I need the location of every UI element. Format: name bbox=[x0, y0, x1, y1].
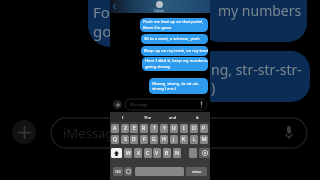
button[interactable]: The bbox=[135, 112, 160, 122]
button[interactable]: 123 bbox=[113, 167, 123, 176]
button[interactable]: Shift bbox=[111, 148, 122, 158]
staticText: O bbox=[192, 125, 196, 132]
staticText: Z bbox=[124, 125, 127, 132]
staticText: E bbox=[133, 125, 136, 132]
staticText: Kiphab bbox=[154, 9, 164, 13]
button[interactable]: A bbox=[185, 112, 210, 122]
button[interactable]: F bbox=[140, 135, 148, 144]
staticText: Push me foot up on that pedal, them I'm … bbox=[143, 19, 204, 31]
staticText: F bbox=[143, 136, 146, 143]
button[interactable]: 30 to a semi, a scheme, yeah bbox=[141, 34, 208, 44]
button[interactable]: iMessage bbox=[51, 118, 307, 148]
staticText: I bbox=[122, 115, 124, 120]
button[interactable]: H bbox=[160, 135, 168, 144]
staticText: Q bbox=[113, 136, 117, 143]
staticText: A bbox=[113, 125, 117, 132]
button[interactable]: Here I died it, keep my numbers going st… bbox=[142, 57, 208, 71]
button[interactable]: retour bbox=[186, 167, 207, 176]
button[interactable]: K bbox=[180, 135, 188, 144]
button[interactable]: (Strong, strong, str-str-str- strong ) e… bbox=[149, 78, 208, 94]
button[interactable]: and bbox=[160, 112, 185, 122]
staticText: go bbox=[93, 21, 112, 41]
button[interactable]: I bbox=[110, 112, 135, 122]
button[interactable]: Emoji bbox=[124, 167, 132, 176]
staticText: H bbox=[162, 136, 166, 143]
button[interactable]: Backspace bbox=[199, 148, 210, 158]
button[interactable]: W bbox=[124, 148, 132, 158]
staticText: J bbox=[173, 136, 175, 143]
staticText: U bbox=[172, 125, 176, 132]
staticText: C bbox=[146, 150, 150, 157]
button[interactable]: Space bbox=[135, 167, 184, 176]
button[interactable]: V bbox=[153, 148, 161, 158]
button[interactable]: I bbox=[180, 124, 188, 133]
staticText: I bbox=[183, 125, 185, 132]
button[interactable]: M bbox=[200, 135, 208, 144]
button[interactable]: O bbox=[190, 124, 198, 133]
staticText: M bbox=[202, 136, 207, 143]
button[interactable]: Z bbox=[121, 124, 129, 133]
staticText: Here I died it, keep my numbers going st… bbox=[145, 58, 208, 70]
button[interactable]: U bbox=[170, 124, 178, 133]
staticText: T bbox=[153, 125, 156, 132]
button[interactable]: Q bbox=[111, 135, 119, 144]
button[interactable]: L bbox=[190, 135, 198, 144]
staticText: and bbox=[169, 115, 177, 120]
staticText: Fo bbox=[93, 2, 110, 22]
staticText: (Strong, strong, str-str-str- strong ) e… bbox=[152, 81, 200, 92]
button[interactable]: Add attachment bbox=[12, 120, 36, 144]
button[interactable]: X bbox=[134, 148, 142, 158]
button[interactable]: J bbox=[170, 135, 178, 144]
button[interactable] bbox=[189, 148, 197, 158]
button[interactable]: Y bbox=[160, 124, 168, 133]
button[interactable]: N bbox=[173, 148, 181, 158]
staticText: K bbox=[182, 136, 186, 143]
staticText: 30 to a semi, a scheme, yeah bbox=[144, 36, 200, 42]
staticText: X bbox=[137, 150, 140, 157]
staticText: W bbox=[126, 150, 131, 157]
staticText: S bbox=[124, 136, 127, 143]
button[interactable]: T bbox=[150, 124, 158, 133]
button[interactable]: Add attachment bbox=[113, 100, 122, 109]
staticText: Y bbox=[163, 125, 166, 132]
staticText: iMessage bbox=[130, 102, 148, 107]
button[interactable]: S bbox=[121, 135, 129, 144]
staticText: N bbox=[175, 150, 179, 157]
staticText: L bbox=[193, 136, 196, 143]
other: Dictate bbox=[285, 126, 293, 140]
button[interactable]: B bbox=[163, 148, 171, 158]
button[interactable]: Beep up on my track, on my track bbox=[141, 46, 208, 56]
button[interactable]: G bbox=[150, 135, 158, 144]
staticText: D bbox=[132, 136, 136, 143]
button[interactable]: E bbox=[130, 124, 138, 133]
other: Back bbox=[113, 4, 116, 9]
staticText: retour bbox=[192, 170, 202, 174]
staticText: my numbers bbox=[218, 1, 302, 20]
button[interactable]: P bbox=[200, 124, 208, 133]
staticText: 123 bbox=[115, 170, 121, 174]
staticText: The bbox=[144, 115, 151, 120]
staticText: ng, str-str-str- bbox=[211, 60, 302, 79]
button[interactable]: C bbox=[144, 148, 152, 158]
staticText: A bbox=[196, 115, 199, 120]
staticText: V bbox=[155, 150, 159, 157]
button[interactable]: Push me foot up on that pedal, them I'm … bbox=[140, 18, 208, 32]
staticText: G bbox=[152, 136, 156, 143]
staticText: P bbox=[202, 125, 206, 132]
staticText: ) bbox=[211, 78, 216, 97]
button[interactable]: D bbox=[130, 135, 138, 144]
staticText: iMessage bbox=[63, 124, 121, 142]
staticText: B bbox=[165, 150, 169, 157]
staticText: R bbox=[142, 125, 146, 132]
button[interactable]: A bbox=[111, 124, 119, 133]
button[interactable]: iMessage bbox=[125, 99, 207, 110]
staticText: Beep up on my track, on my track bbox=[144, 48, 208, 54]
button[interactable]: R bbox=[140, 124, 148, 133]
